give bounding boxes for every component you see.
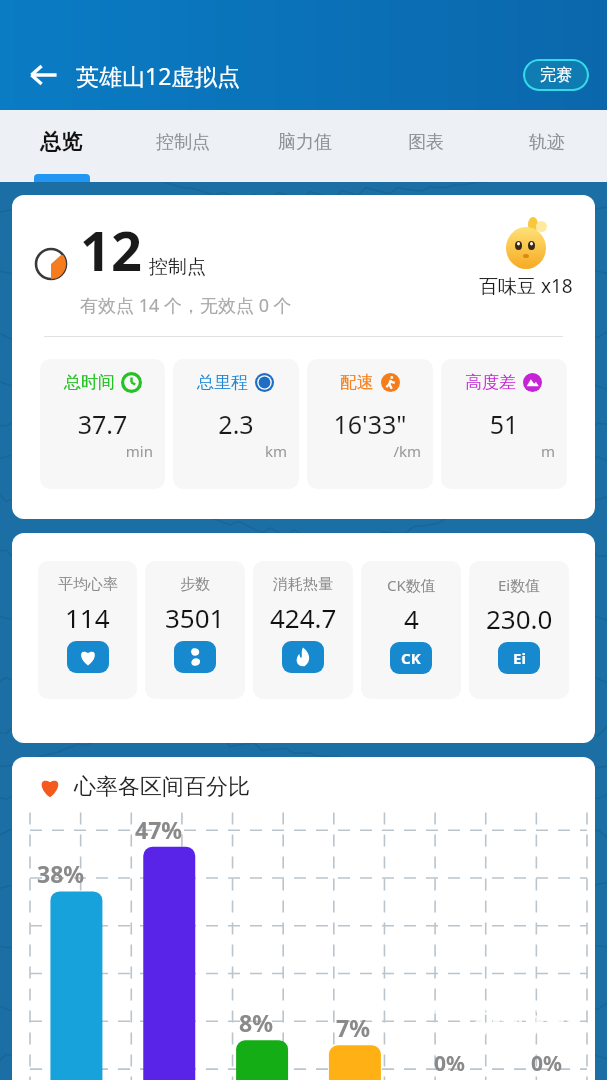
staticText: 4 <box>404 601 419 636</box>
staticText: 16'33" <box>315 407 425 441</box>
staticText: 图表 <box>408 131 444 154</box>
staticText: 2.3 <box>181 407 291 441</box>
staticText: 完赛 <box>540 65 572 85</box>
button[interactable]: 脑力值 <box>244 110 365 174</box>
button[interactable]: Ei数值 <box>469 561 569 699</box>
staticText: 总览 <box>40 129 82 155</box>
staticText: 心率各区间百分比 <box>74 773 250 801</box>
staticText: 步数 <box>180 575 210 594</box>
staticText: 百味豆 x18 <box>479 273 573 299</box>
staticText: 51 <box>449 407 559 441</box>
staticText: 3501 <box>165 600 225 635</box>
staticText: 消耗热量 <box>273 575 333 594</box>
button[interactable]: 总里程 <box>173 359 299 489</box>
staticText: 脑力值 <box>278 131 332 154</box>
staticText: CK <box>401 648 421 668</box>
staticText: 38% <box>37 858 85 889</box>
staticText: Rengwan Games <box>475 1040 578 1058</box>
staticText: 英雄山12虚拟点 <box>76 60 241 91</box>
staticText: 8% <box>239 1007 273 1038</box>
staticText: Ei数值 <box>498 575 541 595</box>
staticText: 高度差 <box>465 372 516 393</box>
staticText: 轨迹 <box>529 131 565 154</box>
button[interactable]: 步数 <box>145 561 245 699</box>
staticText: 7% <box>336 1012 370 1043</box>
button[interactable]: 总览 <box>0 110 122 174</box>
button[interactable]: 完赛 <box>523 59 589 91</box>
button[interactable]: 轨迹 <box>486 110 607 174</box>
staticText: 37.7 <box>48 407 157 441</box>
button[interactable]: 消耗热量 <box>253 561 353 699</box>
staticText: 47% <box>135 814 183 845</box>
staticText: 平均心率 <box>58 575 118 594</box>
staticText: CK数值 <box>387 575 436 595</box>
staticText: 0% <box>531 1049 562 1078</box>
button[interactable]: 总时间 <box>40 359 165 489</box>
button[interactable]: 平均心率 <box>38 561 137 699</box>
staticText: 114 <box>65 600 110 635</box>
button[interactable]: 高度差 <box>441 359 567 489</box>
staticText: Ei <box>513 648 526 668</box>
staticText: /km <box>315 441 421 461</box>
button[interactable]: 控制点 <box>122 110 244 174</box>
staticText: 仍玩游戏 <box>475 1007 579 1040</box>
button[interactable]: CK数值 <box>361 561 461 699</box>
staticText: 0% <box>434 1049 465 1078</box>
staticText: 控制点 <box>156 131 210 154</box>
staticText: 有效点 14 个，无效点 0 个 <box>80 293 292 318</box>
staticText: 230.0 <box>486 601 553 636</box>
staticText: min <box>48 441 153 461</box>
staticText: 控制点 <box>149 255 206 279</box>
staticText: 配速 <box>340 372 374 393</box>
button[interactable]: Back <box>18 49 70 101</box>
staticText: 424.7 <box>270 600 337 635</box>
staticText: m <box>449 441 555 461</box>
button[interactable]: 图表 <box>365 110 486 174</box>
staticText: km <box>181 441 287 461</box>
staticText: 12 <box>80 213 142 287</box>
button[interactable]: 配速 <box>307 359 433 489</box>
staticText: 总时间 <box>64 372 115 393</box>
staticText: 总里程 <box>197 372 248 393</box>
